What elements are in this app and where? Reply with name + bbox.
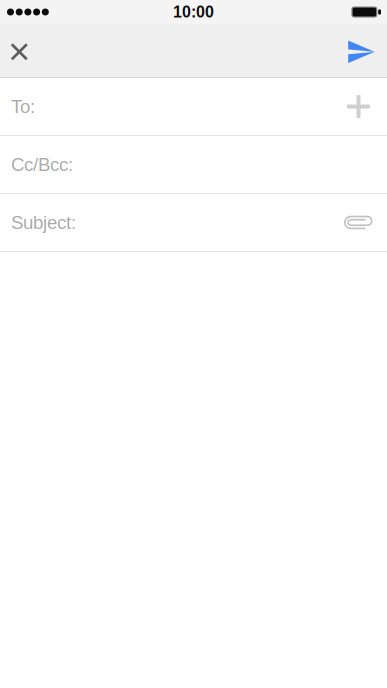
staticText: To: — [11, 96, 35, 117]
button[interactable]: Send — [332, 24, 387, 77]
staticText: Cc/Bcc: — [11, 154, 73, 175]
staticText: 10:00 — [173, 3, 214, 21]
button[interactable]: Close — [0, 24, 44, 77]
button[interactable]: Attach file — [330, 194, 387, 251]
button[interactable]: Cc/Bcc: — [0, 136, 387, 193]
button[interactable]: To: — [0, 78, 330, 135]
button[interactable]: Add recipient — [330, 78, 387, 135]
button[interactable]: Subject: — [0, 194, 330, 251]
staticText: Subject: — [11, 212, 76, 233]
